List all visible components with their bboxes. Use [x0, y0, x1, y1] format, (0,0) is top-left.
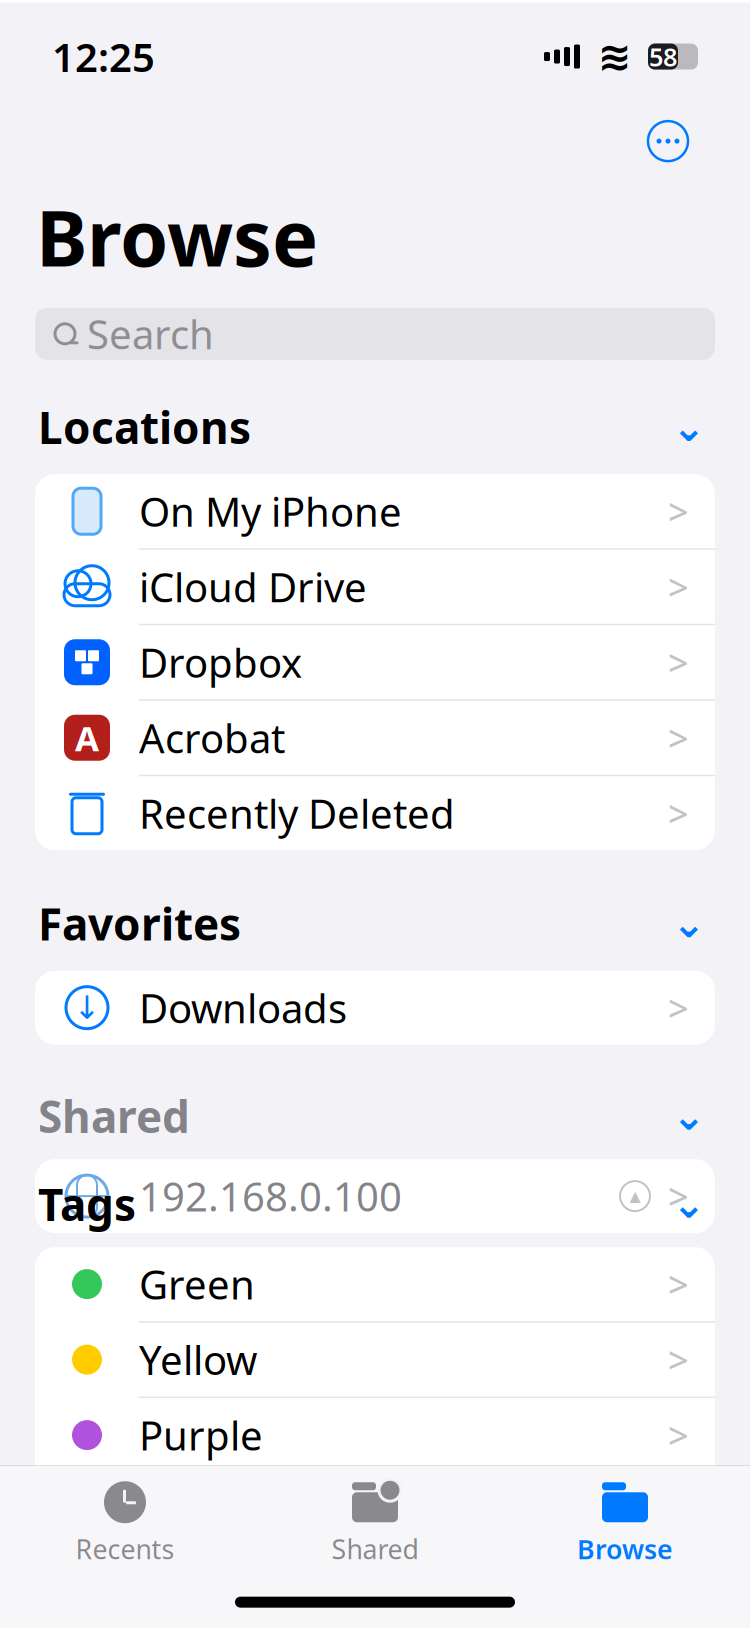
staticText: ↓ — [73, 989, 100, 1026]
staticText: 12:25 — [52, 30, 155, 83]
button[interactable]: Purple — [35, 1398, 715, 1472]
button[interactable]: 192.168.0.100 — [35, 1159, 715, 1233]
staticText: Acrobat — [139, 711, 285, 764]
staticText: Recents — [75, 1531, 174, 1567]
button[interactable]: Collapse Favorites — [666, 903, 712, 943]
button[interactable]: Collapse Shared — [666, 1096, 712, 1136]
staticText: > — [668, 487, 689, 535]
staticText: Recently Deleted — [139, 787, 455, 840]
button[interactable]: On My iPhone — [35, 474, 715, 548]
staticText: > — [668, 563, 689, 611]
staticText: 58 — [649, 40, 677, 73]
staticText: Search — [87, 307, 214, 360]
staticText: Shared — [331, 1531, 418, 1567]
button[interactable]: Recents — [0, 1466, 250, 1567]
staticText: > — [668, 714, 689, 762]
staticText: Shared — [38, 1087, 190, 1145]
staticText: Green — [139, 1257, 255, 1311]
staticText: Browse — [577, 1531, 673, 1567]
staticText: > — [668, 789, 689, 837]
button[interactable]: More — [638, 111, 698, 171]
button[interactable]: Browse — [500, 1466, 750, 1567]
staticText: On My iPhone — [139, 485, 402, 538]
staticText: 192.168.0.100 — [139, 1169, 402, 1223]
button[interactable]: Green — [35, 1247, 715, 1321]
staticText: Red — [139, 1484, 212, 1537]
staticText: Tags — [38, 1175, 136, 1233]
staticText: ⌄ — [672, 1093, 706, 1139]
staticText: ≋ — [598, 34, 632, 79]
button[interactable]: Shared — [250, 1466, 500, 1567]
button[interactable]: Search — [0, 308, 750, 360]
staticText: ⌄ — [672, 901, 706, 946]
button[interactable]: Yellow — [35, 1323, 715, 1397]
staticText: > — [668, 638, 689, 686]
staticText: ▲ — [629, 1188, 640, 1204]
button[interactable]: iCloud Drive — [35, 550, 715, 624]
button[interactable]: Collapse Locations — [666, 407, 712, 447]
staticText: > — [668, 1260, 689, 1308]
staticText: > — [668, 984, 689, 1032]
staticText: iCloud Drive — [139, 560, 367, 613]
button[interactable]: Recently Deleted — [35, 776, 715, 850]
staticText: Yellow — [139, 1333, 257, 1386]
staticText: Browse — [36, 185, 318, 288]
button[interactable]: Red — [35, 1474, 715, 1548]
staticText: Dropbox — [139, 636, 302, 689]
staticText: Favorites — [38, 894, 241, 953]
staticText: Downloads — [139, 981, 347, 1034]
staticText: > — [668, 1336, 689, 1383]
button[interactable]: A — [35, 701, 715, 775]
button[interactable]: ↓ — [35, 971, 715, 1045]
staticText: ⌄ — [672, 404, 706, 450]
button[interactable]: Collapse Tags — [666, 1184, 712, 1224]
staticText: Purple — [139, 1408, 263, 1462]
staticText: > — [668, 1172, 689, 1220]
staticText: Locations — [38, 398, 251, 456]
staticText: ⌄ — [672, 1181, 706, 1227]
button[interactable]: Dropbox — [35, 625, 715, 699]
staticText: > — [668, 1411, 689, 1459]
staticText: A — [75, 715, 99, 761]
